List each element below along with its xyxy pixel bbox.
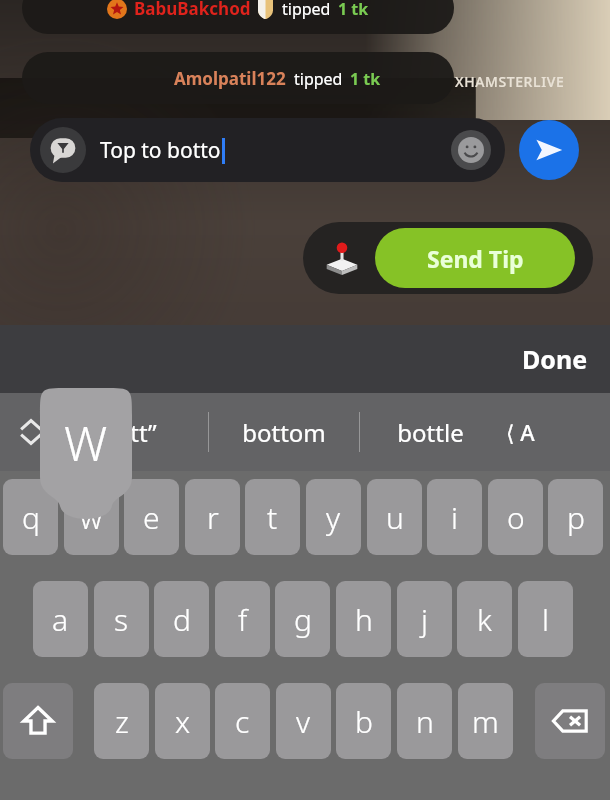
button[interactable]: Done <box>500 332 610 386</box>
button[interactable]: q <box>3 479 58 555</box>
button[interactable]: b <box>336 683 391 759</box>
button[interactable]: o <box>488 479 543 555</box>
button[interactable]: Send <box>519 120 579 180</box>
button[interactable]: Backspace <box>535 683 605 759</box>
staticText: e <box>143 497 160 538</box>
staticText: c <box>235 701 250 742</box>
button[interactable]: d <box>154 581 209 657</box>
button[interactable]: y <box>306 479 361 555</box>
staticText: Send Tip <box>427 243 524 274</box>
staticText: Top to botto <box>100 136 221 165</box>
staticText: a <box>52 599 69 640</box>
staticText: XHAMSTERLIVE <box>455 72 565 91</box>
staticText: j <box>421 599 428 640</box>
button[interactable]: f <box>215 581 270 657</box>
staticText: m <box>472 701 499 742</box>
staticText: l <box>542 599 549 640</box>
staticText: h <box>355 599 373 640</box>
staticText: p <box>567 497 585 538</box>
button[interactable]: v <box>276 683 331 759</box>
staticText: W <box>64 410 108 475</box>
button[interactable]: tt” <box>78 393 208 471</box>
staticText: tt” <box>130 416 157 449</box>
button[interactable]: m <box>458 683 513 759</box>
button[interactable]: t <box>245 479 300 555</box>
button[interactable]: Shift <box>3 683 73 759</box>
button[interactable]: c <box>215 683 270 759</box>
staticText: d <box>173 599 191 640</box>
staticText: s <box>114 599 129 640</box>
staticText: bottom <box>242 416 326 449</box>
staticText: t <box>267 497 278 538</box>
button[interactable]: r <box>185 479 240 555</box>
staticText: bottle <box>397 416 464 449</box>
staticText: tipped <box>294 68 343 90</box>
staticText: f <box>238 599 248 640</box>
button[interactable]: i <box>427 479 482 555</box>
button[interactable]: ⟨ A <box>500 417 541 447</box>
staticText: Done <box>522 342 588 376</box>
button[interactable]: g <box>275 581 330 657</box>
button[interactable]: Chat options <box>30 118 505 182</box>
button[interactable]: n <box>397 683 452 759</box>
staticText: b <box>355 701 373 742</box>
button[interactable]: h <box>336 581 391 657</box>
button[interactable]: bottom <box>209 393 359 471</box>
staticText: u <box>386 497 404 538</box>
staticText: 1 tk <box>338 0 369 20</box>
staticText: ⟨ A <box>506 417 535 447</box>
staticText: tipped <box>282 0 331 20</box>
button[interactable]: Send Tip <box>375 228 575 288</box>
button[interactable]: Expand suggestions <box>14 415 48 449</box>
staticText: BabuBakchod <box>134 0 251 20</box>
staticText: n <box>416 701 434 742</box>
staticText: o <box>507 497 525 538</box>
staticText: 1 tk <box>350 68 381 90</box>
staticText: z <box>115 701 129 742</box>
staticText: v <box>296 701 311 742</box>
button[interactable]: Tip menu <box>313 229 371 287</box>
button[interactable]: z <box>94 683 149 759</box>
button[interactable]: BabuBakchod <box>22 0 454 34</box>
button[interactable]: s <box>94 581 149 657</box>
staticText: i <box>451 497 458 538</box>
button[interactable]: Tip menu <box>303 222 593 294</box>
staticText: g <box>294 599 312 640</box>
button[interactable]: p <box>548 479 603 555</box>
button[interactable]: Emoji <box>451 130 491 170</box>
staticText: Amolpatil122 <box>174 67 286 90</box>
button[interactable]: Amolpatil122 <box>22 52 454 104</box>
button[interactable]: k <box>457 581 512 657</box>
staticText: y <box>326 497 341 538</box>
button[interactable]: l <box>518 581 573 657</box>
button[interactable]: w <box>64 479 119 555</box>
button[interactable]: u <box>367 479 422 555</box>
staticText: x <box>175 701 191 742</box>
button[interactable]: j <box>397 581 452 657</box>
button[interactable]: x <box>155 683 210 759</box>
button[interactable]: Chat options <box>40 127 86 173</box>
button[interactable]: e <box>124 479 179 555</box>
staticText: w <box>80 497 103 538</box>
staticText: q <box>22 497 40 538</box>
staticText: r <box>207 497 219 538</box>
button[interactable]: a <box>33 581 88 657</box>
button[interactable]: bottle <box>360 393 500 471</box>
staticText: k <box>477 599 492 640</box>
